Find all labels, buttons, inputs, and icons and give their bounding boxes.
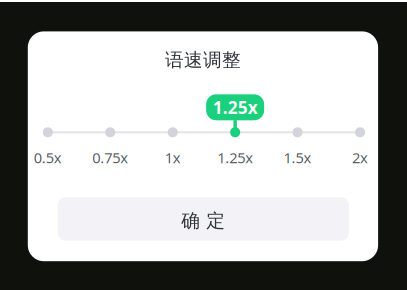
button[interactable]: 1x — [168, 127, 178, 137]
button[interactable]: 0.75x — [105, 127, 115, 137]
staticText: 确 定 — [181, 209, 225, 232]
button[interactable]: 2x — [355, 127, 365, 137]
staticText: 2x — [352, 148, 368, 167]
button[interactable]: 确 定 — [58, 197, 349, 241]
staticText: 0.5x — [34, 148, 62, 167]
staticText: 1x — [165, 148, 181, 167]
staticText: 0.75x — [92, 148, 128, 167]
staticText: 1.25x — [217, 148, 253, 167]
button[interactable]: 1.25x — [230, 127, 240, 137]
staticText: 1.5x — [284, 148, 312, 167]
staticText: 语速调整 — [165, 48, 241, 71]
staticText: 1.25x — [213, 96, 258, 119]
button[interactable]: 1.5x — [293, 127, 303, 137]
button[interactable]: 0.5x — [43, 127, 53, 137]
